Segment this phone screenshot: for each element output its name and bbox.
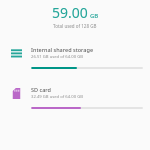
staticText: 59.00	[52, 3, 88, 22]
staticText: SD card	[31, 86, 51, 93]
other: Internal shared storage	[6, 43, 26, 63]
button[interactable]: SD card	[0, 81, 150, 111]
staticText: GB	[90, 12, 99, 20]
staticText: Total used of 128 GB	[53, 23, 97, 29]
button[interactable]: Internal shared storage	[0, 41, 150, 71]
staticText: 26.51 GB used of 64.00 GB	[31, 54, 83, 60]
other: SD card	[6, 83, 26, 103]
staticText: Internal shared storage	[31, 46, 94, 53]
staticText: 32.49 GB used of 64.00 GB	[31, 94, 83, 100]
